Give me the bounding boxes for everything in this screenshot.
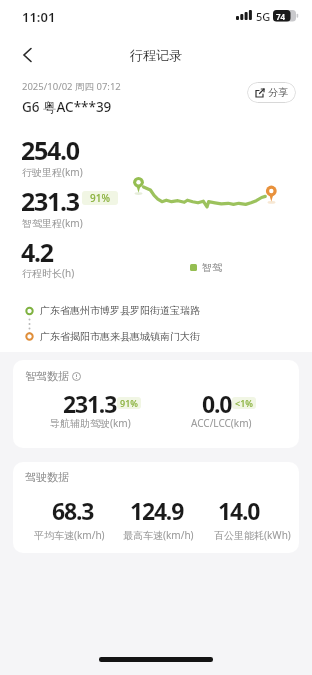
staticText: <1% [235, 397, 253, 409]
staticText: 智驾数据 [25, 369, 69, 383]
staticText: 231.3 [63, 388, 117, 419]
staticText: 91% [90, 191, 110, 205]
staticText: 5G [256, 9, 271, 24]
staticText: 254.0 [21, 133, 79, 167]
staticText: G6 粤AC***39 [22, 98, 112, 116]
staticText: 平均车速(km/h) [34, 528, 105, 542]
staticText: 导航辅助驾驶(km) [50, 416, 131, 430]
staticText: 4.2 [21, 235, 53, 269]
button[interactable]: 广东省惠州市博罗县罗阳街道宝瑞路 [40, 304, 200, 317]
staticText: 驾驶数据 [25, 470, 69, 484]
staticText: 0.0 [202, 388, 232, 419]
staticText: 11:01 [22, 8, 56, 26]
staticText: 14.0 [218, 495, 260, 526]
staticText: 行驶里程(km) [22, 165, 83, 179]
staticText: 智驾里程(km) [22, 216, 83, 230]
staticText: 行程时长(h) [22, 266, 75, 280]
staticText: 231.3 [21, 184, 79, 218]
staticText: ACC/LCC(km) [191, 416, 252, 430]
staticText: 74 [276, 11, 286, 22]
staticText: 2025/10/02 周四 07:12 [22, 80, 121, 93]
staticText: 分享 [268, 86, 288, 99]
button[interactable]: 广东省揭阳市惠来县惠城镇南门大街 [40, 330, 200, 343]
staticText: 最高车速(km/h) [123, 528, 194, 542]
staticText: 智驾 [202, 261, 222, 274]
button[interactable] [14, 42, 40, 68]
staticText: 68.3 [52, 495, 94, 526]
button[interactable] [72, 372, 81, 381]
staticText: 行程记录 [0, 47, 312, 63]
staticText: 124.9 [130, 495, 184, 526]
staticText: 百公里能耗(kWh) [214, 528, 291, 542]
staticText: 91% [120, 397, 138, 409]
button[interactable]: 分享 [247, 82, 296, 103]
